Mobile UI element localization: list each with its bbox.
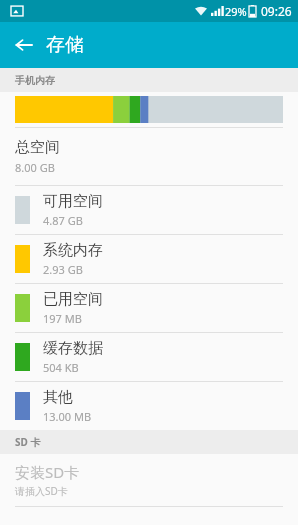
button[interactable]: Back bbox=[6, 27, 42, 63]
staticText: 系统内存 bbox=[43, 241, 103, 260]
staticText: 缓存数据 bbox=[43, 339, 103, 358]
staticText: 其他 bbox=[43, 388, 73, 407]
staticText: 13.00 MB bbox=[43, 409, 92, 424]
staticText: 2.93 GB bbox=[43, 262, 83, 277]
staticText: 安装SD卡 bbox=[15, 462, 80, 482]
button[interactable]: 可用空间 bbox=[0, 186, 298, 234]
button[interactable]: 已用空间 bbox=[0, 284, 298, 332]
button[interactable]: 总空间 bbox=[0, 128, 298, 185]
staticText: 8.00 GB bbox=[15, 160, 55, 175]
button[interactable]: 缓存数据 bbox=[0, 333, 298, 381]
button[interactable]: 安装SD卡 bbox=[0, 454, 298, 506]
staticText: 存储 bbox=[46, 33, 84, 57]
staticText: 4.87 GB bbox=[43, 213, 83, 228]
staticText: 总空间 bbox=[15, 138, 60, 157]
staticText: 504 KB bbox=[43, 360, 79, 375]
button[interactable]: 其他 bbox=[0, 382, 298, 430]
staticText: 09:26 bbox=[261, 3, 292, 19]
button[interactable]: 系统内存 bbox=[0, 235, 298, 283]
staticText: 可用空间 bbox=[43, 192, 103, 211]
staticText: 手机内存 bbox=[15, 74, 55, 87]
staticText: 请插入SD卡 bbox=[15, 484, 68, 498]
staticText: SD 卡 bbox=[15, 435, 41, 449]
staticText: 197 MB bbox=[43, 311, 82, 326]
staticText: 已用空间 bbox=[43, 290, 103, 309]
staticText: 29% bbox=[225, 4, 247, 19]
